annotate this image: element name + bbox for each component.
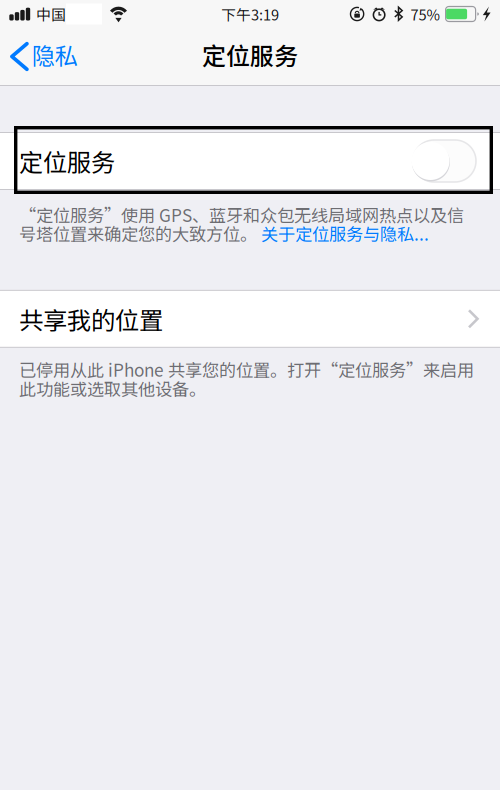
staticText: 已停用从此 iPhone 共享您的位置。打开“定位服务”来启用 xyxy=(19,357,474,382)
button[interactable]: 定位服务 xyxy=(0,132,500,190)
staticText: 75% xyxy=(411,3,441,25)
staticText: 关于定位服务与隐私... xyxy=(261,221,429,246)
staticText: 下午3:19 xyxy=(221,3,279,25)
staticText: 号塔位置来确定您的大致方位。 xyxy=(19,221,261,246)
button[interactable]: 隐私 xyxy=(0,28,86,85)
staticText: “定位服务”使用 GPS、蓝牙和众包无线局域网热点以及信 xyxy=(19,202,464,227)
staticText: 隐私 xyxy=(32,38,78,71)
staticText: 中国 xyxy=(36,3,66,25)
staticText: 定位服务 xyxy=(202,37,298,72)
staticText: 此功能或选取其他设备。 xyxy=(19,376,206,401)
button[interactable]: 共享我的位置 xyxy=(0,290,500,348)
staticText: 共享我的位置 xyxy=(19,301,163,336)
staticText: 定位服务 xyxy=(19,143,115,178)
